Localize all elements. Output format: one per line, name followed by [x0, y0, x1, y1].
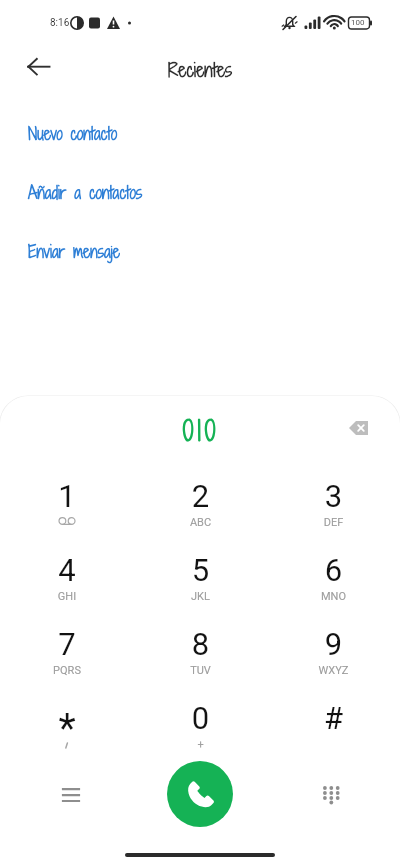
- button[interactable]: 6: [267, 542, 400, 616]
- button[interactable]: 3: [267, 468, 400, 542]
- staticText: JKL: [134, 590, 267, 603]
- button[interactable]: Backspace: [336, 406, 380, 450]
- staticText: Añadir a contactos: [28, 181, 143, 204]
- button[interactable]: 2: [134, 468, 267, 542]
- button[interactable]: #: [267, 690, 400, 764]
- button[interactable]: Nuevo contacto: [0, 104, 400, 163]
- staticText: 8: [134, 626, 267, 662]
- staticText: #: [267, 700, 400, 736]
- button[interactable]: 9: [267, 616, 400, 690]
- button[interactable]: 5: [134, 542, 267, 616]
- staticText: +: [134, 738, 267, 751]
- button[interactable]: 7: [0, 616, 134, 690]
- staticText: 6: [267, 552, 400, 588]
- staticText: Enviar mensaje: [28, 240, 120, 263]
- staticText: 4: [0, 552, 134, 588]
- button[interactable]: Call log: [50, 774, 92, 816]
- staticText: 5: [134, 552, 267, 588]
- staticText: 2: [134, 478, 267, 514]
- button[interactable]: Dialpad: [309, 773, 351, 815]
- button[interactable]: 4: [0, 542, 134, 616]
- staticText: 1: [0, 478, 134, 514]
- staticText: MNO: [267, 590, 400, 603]
- button[interactable]: Call: [167, 761, 233, 827]
- staticText: 0: [134, 700, 267, 736]
- staticText: 3: [267, 478, 400, 514]
- button[interactable]: *: [0, 690, 134, 764]
- staticText: PQRS: [0, 664, 134, 677]
- staticText: ABC: [134, 516, 267, 529]
- staticText: Recientes: [0, 57, 400, 83]
- staticText: DEF: [267, 516, 400, 529]
- staticText: 7: [0, 626, 134, 662]
- staticText: Nuevo contacto: [28, 122, 118, 145]
- staticText: TUV: [134, 664, 267, 677]
- button[interactable]: 1: [0, 468, 134, 542]
- button[interactable]: Back: [19, 47, 59, 87]
- button[interactable]: 8: [134, 616, 267, 690]
- staticText: 100: [351, 18, 365, 27]
- button[interactable]: Enviar mensaje: [0, 222, 400, 281]
- staticText: WXYZ: [267, 664, 400, 677]
- button[interactable]: Añadir a contactos: [0, 163, 400, 222]
- staticText: *: [0, 705, 134, 752]
- staticText: 9: [267, 626, 400, 662]
- button[interactable]: 0: [134, 690, 267, 764]
- staticText: 010: [1, 411, 400, 450]
- staticText: 8:16: [50, 17, 70, 29]
- staticText: GHI: [0, 590, 134, 603]
